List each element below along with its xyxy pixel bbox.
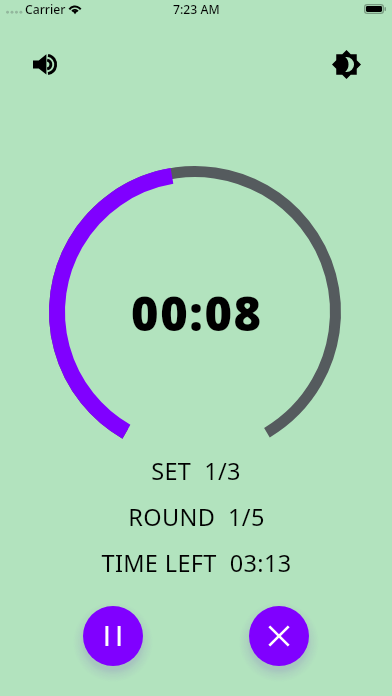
staticText: 00:08: [131, 281, 263, 345]
staticText: SET 1/3: [151, 455, 241, 487]
staticText: Carrier: [25, 1, 66, 18]
button[interactable]: Dark mode: [324, 42, 368, 86]
button[interactable]: Stop: [249, 606, 309, 666]
button[interactable]: Pause: [83, 606, 143, 666]
staticText: 7:23 AM: [173, 1, 220, 18]
staticText: TIME LEFT 03:13: [101, 547, 292, 579]
button[interactable]: Sound: [23, 42, 67, 86]
staticText: ROUND 1/5: [128, 501, 265, 533]
